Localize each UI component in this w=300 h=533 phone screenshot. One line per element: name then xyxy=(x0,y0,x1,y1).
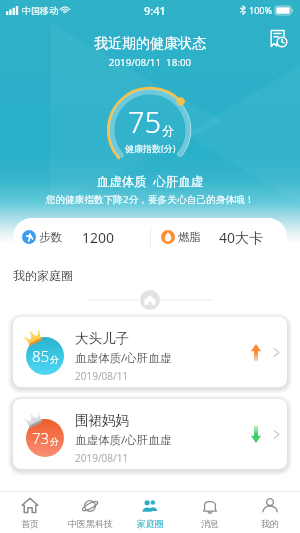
staticText: 2019/08/11 xyxy=(75,451,129,465)
staticText: 中医黑科技 xyxy=(68,518,113,529)
staticText: 分 xyxy=(162,123,174,138)
button[interactable]: 燃脂 xyxy=(161,218,264,256)
staticText: 健康指数(分) xyxy=(125,142,176,154)
staticText: 我的 xyxy=(261,518,279,529)
staticText: 分 xyxy=(50,354,59,365)
button[interactable]: 步数 xyxy=(22,218,115,256)
staticText: 分 xyxy=(50,436,59,447)
staticText: 您的健康指数下降2分，要多关心自己的身体哦！ xyxy=(0,193,300,206)
staticText: 75 xyxy=(128,102,162,141)
staticText: 大头儿子 xyxy=(75,330,129,347)
staticText: 85 xyxy=(32,346,50,366)
button[interactable]: 消息 xyxy=(180,492,240,533)
button[interactable]: 历史记录 xyxy=(268,28,288,48)
staticText: 血虚体质/心肝血虚 xyxy=(75,432,172,448)
staticText: 步数 xyxy=(39,230,62,244)
staticText: 家庭圈 xyxy=(137,518,164,529)
button[interactable]: 85 xyxy=(13,317,287,387)
staticText: 血虚体质/心肝血虚 xyxy=(75,350,172,366)
staticText: 我的家庭圈 xyxy=(13,268,73,283)
staticText: 中国移动 xyxy=(22,5,58,16)
staticText: 2019/08/11 xyxy=(75,369,129,383)
staticText: 40大卡 xyxy=(219,228,264,247)
staticText: 围裙妈妈 xyxy=(75,412,129,429)
staticText: 1200 xyxy=(82,228,115,247)
button[interactable]: 家庭圈 xyxy=(120,492,180,533)
staticText: 2019/08/11 18:00 xyxy=(0,56,300,69)
staticText: 100% xyxy=(249,4,272,16)
staticText: 9:41 xyxy=(144,3,166,18)
staticText: 73 xyxy=(32,428,50,448)
staticText: 首页 xyxy=(21,518,39,529)
staticText: 血虚体质 心肝血虚 xyxy=(0,173,300,190)
staticText: 燃脂 xyxy=(178,230,201,244)
button[interactable]: 中医黑科技 xyxy=(60,492,120,533)
staticText: 消息 xyxy=(201,518,219,529)
button[interactable]: 首页 xyxy=(0,492,60,533)
staticText: 我近期的健康状态 xyxy=(0,35,300,53)
button[interactable]: 73 xyxy=(13,399,287,469)
button[interactable]: 我的 xyxy=(240,492,300,533)
